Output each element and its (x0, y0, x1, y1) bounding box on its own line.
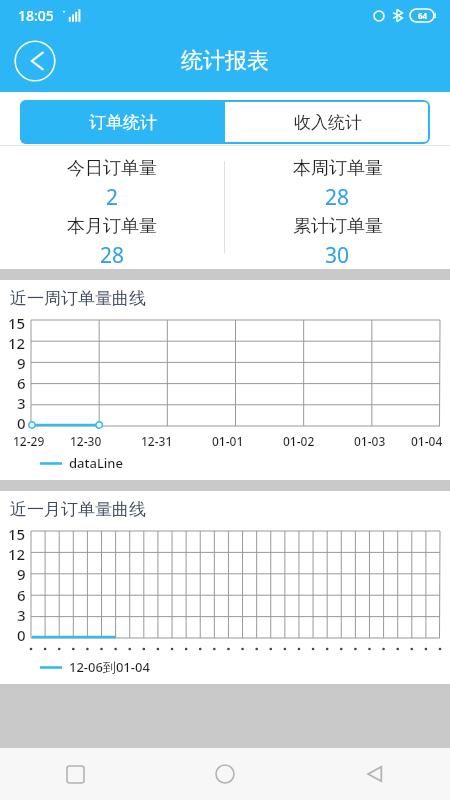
staticText: 12-31 (141, 433, 173, 449)
staticText: 28 (100, 241, 125, 269)
staticText: 01-03 (354, 433, 386, 449)
button[interactable]: Back (300, 748, 450, 800)
staticText: 9 (17, 564, 26, 584)
staticText: 9 (17, 353, 26, 373)
staticText: 3 (17, 393, 26, 413)
button[interactable]: 收入统计 (225, 100, 430, 144)
staticText: 统计报表 (181, 47, 269, 75)
button[interactable]: Back (14, 40, 56, 82)
button[interactable]: Recent apps (0, 748, 150, 800)
staticText: 01-02 (283, 433, 315, 449)
staticText: 18:05 (18, 6, 54, 25)
staticText: 15 (8, 313, 26, 333)
staticText: 01-01 (212, 433, 244, 449)
staticText: 2 (106, 183, 119, 212)
staticText: 本月订单量 (67, 215, 157, 238)
staticText: 本周订单量 (293, 157, 383, 180)
staticText: 30 (325, 241, 350, 269)
staticText: 6 (17, 373, 26, 393)
staticText: 12-29 (13, 433, 45, 449)
staticText: 12-30 (70, 433, 102, 449)
staticText: dataLine (69, 454, 123, 472)
staticText: 12 (8, 544, 26, 564)
staticText: 12 (8, 333, 26, 353)
button[interactable]: Home (150, 748, 300, 800)
staticText: 0 (17, 413, 26, 433)
button[interactable]: 订单统计 (20, 100, 225, 144)
staticText: 近一周订单量曲线 (10, 288, 146, 309)
staticText: 近一月订单量曲线 (10, 499, 146, 520)
staticText: 0 (17, 625, 26, 645)
staticText: 订单统计 (89, 112, 157, 133)
staticText: 64 (418, 10, 428, 21)
staticText: 累计订单量 (293, 215, 383, 238)
staticText: 15 (8, 524, 26, 544)
staticText: 收入统计 (294, 112, 362, 133)
staticText: 28 (325, 183, 350, 212)
staticText: 今日订单量 (67, 157, 157, 180)
staticText: 3 (17, 605, 26, 625)
staticText: 12-06到01-04 (69, 658, 150, 676)
staticText: 6 (17, 585, 26, 605)
staticText: 01-04 (411, 433, 443, 449)
